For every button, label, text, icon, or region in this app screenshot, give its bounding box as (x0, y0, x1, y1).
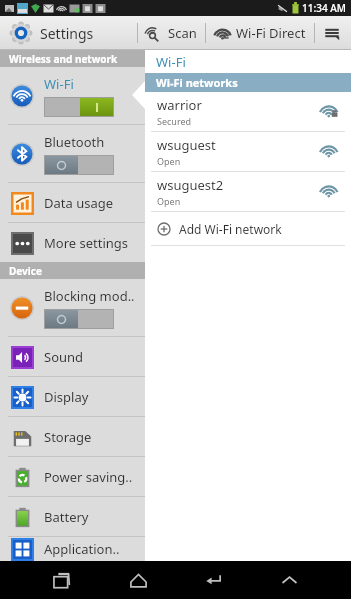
button[interactable]: Application.. (0, 537, 145, 561)
staticText: Sound (44, 348, 84, 366)
button[interactable] (44, 97, 114, 117)
staticText: Settings (40, 24, 94, 43)
staticText: Storage (44, 428, 92, 446)
button[interactable]: Storage (0, 417, 145, 456)
staticText: warrior (157, 96, 202, 114)
button[interactable]: warrior (145, 92, 351, 131)
staticText: Wi-Fi networks (156, 75, 238, 90)
button[interactable]: More options (315, 16, 349, 50)
button[interactable]: Back (187, 561, 239, 599)
button[interactable]: Wi-Fi networks (145, 73, 351, 92)
staticText: Display (44, 388, 89, 406)
button[interactable]: Data usage (0, 183, 145, 222)
button[interactable]: Wi-Fi (0, 67, 145, 124)
button[interactable]: Power saving.. (0, 457, 145, 496)
button[interactable]: Scan (138, 16, 205, 50)
button[interactable]: Settings (0, 16, 102, 50)
button[interactable]: Recent apps (36, 561, 88, 599)
button[interactable]: Battery (0, 497, 145, 536)
button[interactable]: More settings (0, 223, 145, 262)
staticText: Data usage (44, 194, 114, 212)
button[interactable] (44, 309, 114, 329)
button[interactable] (44, 155, 114, 175)
button[interactable]: Display (0, 377, 145, 416)
staticText: Blocking mod.. (44, 287, 135, 305)
button[interactable]: Wi-Fi Direct (206, 16, 314, 50)
staticText: Power saving.. (44, 468, 133, 486)
button[interactable]: Blocking mod.. (0, 279, 145, 336)
staticText: Wi-Fi (44, 75, 74, 93)
staticText: wsuguest (157, 136, 216, 154)
staticText: Scan (168, 24, 197, 42)
button[interactable]: wsuguest (145, 132, 351, 171)
button[interactable]: Add Wi-Fi network (145, 212, 351, 245)
staticText: Open (157, 155, 181, 167)
staticText: Battery (44, 508, 89, 526)
staticText: Application.. (44, 540, 120, 558)
staticText: Wi-Fi (156, 53, 186, 71)
button[interactable]: Bluetooth (0, 125, 145, 182)
staticText: Wi-Fi Direct (236, 24, 306, 42)
button[interactable]: wsuguest2 (145, 172, 351, 211)
button[interactable]: Sound (0, 337, 145, 376)
button[interactable]: Show keyboard (263, 561, 315, 599)
staticText: Device (9, 264, 42, 278)
staticText: Bluetooth (44, 133, 105, 151)
staticText: Open (157, 195, 181, 207)
staticText: Secured (157, 115, 192, 127)
button[interactable]: Home (112, 561, 164, 599)
staticText: Add Wi-Fi network (179, 221, 282, 237)
staticText: Wireless and network (9, 52, 118, 66)
staticText: More settings (44, 234, 129, 252)
staticText: wsuguest2 (157, 176, 224, 194)
staticText: 11:34 AM (302, 1, 346, 15)
